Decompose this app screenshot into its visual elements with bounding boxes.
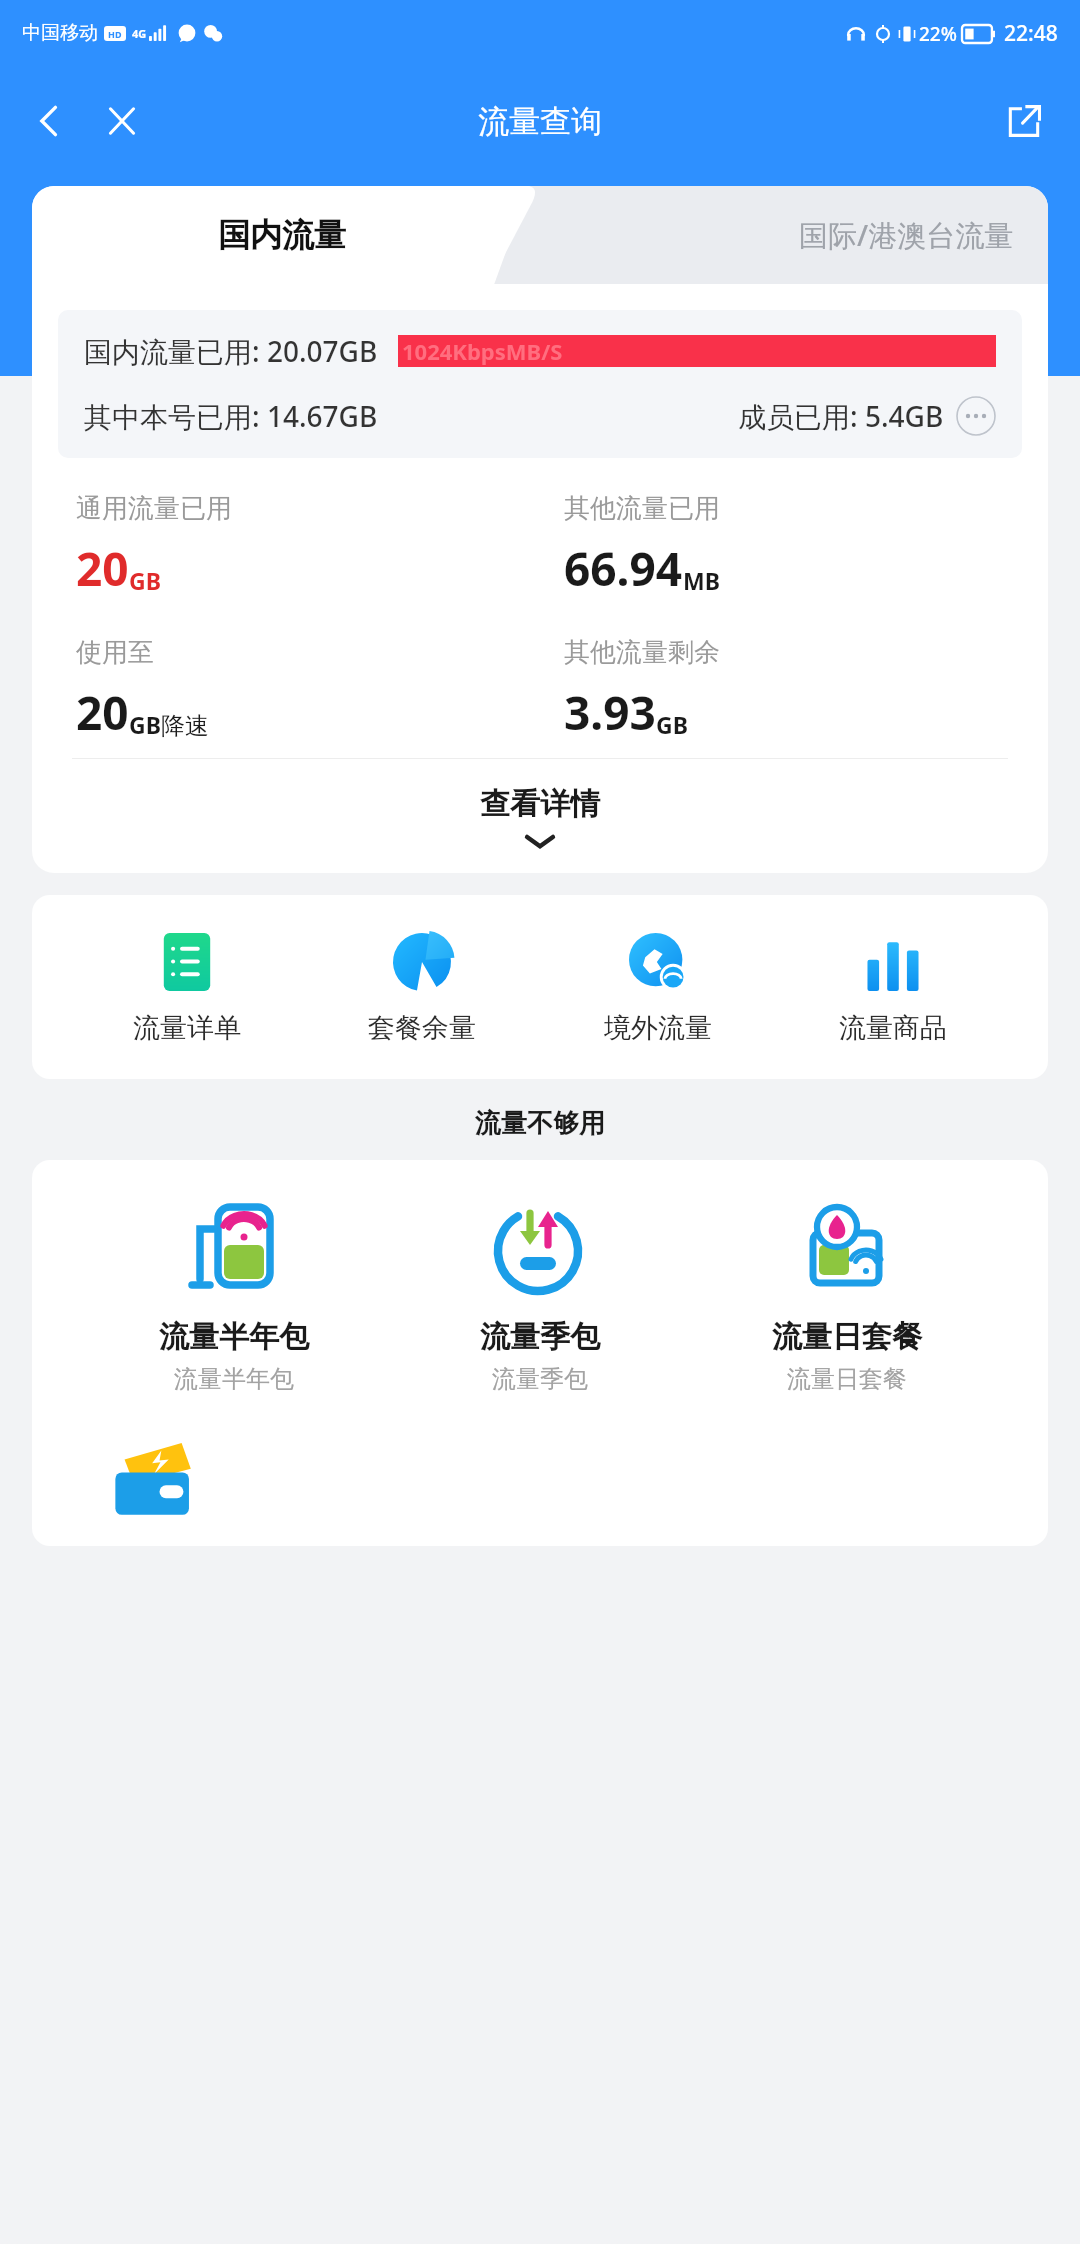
button[interactable]: 流量详单 bbox=[107, 929, 267, 1045]
staticText: 流量不够用 bbox=[0, 1107, 1080, 1140]
button[interactable]: 套餐余量 bbox=[342, 929, 502, 1045]
button[interactable]: 流量半年包 bbox=[129, 1194, 339, 1394]
button[interactable]: 流量季包 bbox=[435, 1194, 645, 1394]
staticText: 流量日套餐 bbox=[772, 1318, 922, 1356]
staticText: HD bbox=[108, 28, 122, 40]
staticText: 22:48 bbox=[1004, 19, 1058, 48]
staticText: 套餐余量 bbox=[368, 1011, 476, 1045]
staticText: 使用至 bbox=[76, 636, 154, 669]
staticText: 流量日套餐 bbox=[787, 1364, 907, 1394]
staticText: 4G bbox=[132, 26, 147, 41]
staticText: 流量半年包 bbox=[159, 1318, 309, 1356]
button[interactable] bbox=[32, 186, 1048, 284]
staticText: 流量季包 bbox=[492, 1364, 588, 1394]
button[interactable]: Share bbox=[988, 85, 1060, 157]
staticText: 流量季包 bbox=[480, 1318, 600, 1356]
button[interactable]: Close bbox=[86, 85, 158, 157]
staticText: 国内流量已用: 20.07GB bbox=[84, 332, 378, 370]
staticText: 流量查询 bbox=[478, 102, 602, 141]
button[interactable]: 境外流量 bbox=[578, 929, 738, 1045]
button[interactable]: 流量日套餐 bbox=[742, 1194, 952, 1394]
staticText: GB bbox=[656, 709, 688, 740]
staticText: 成员已用: 5.4GB bbox=[738, 397, 944, 435]
button[interactable]: 流量商品 bbox=[813, 929, 973, 1045]
staticText: 20 bbox=[76, 537, 129, 600]
staticText: GB bbox=[129, 709, 161, 740]
staticText: MB bbox=[683, 565, 720, 596]
staticText: 流量商品 bbox=[839, 1011, 947, 1045]
staticText: 3.93 bbox=[564, 681, 656, 744]
staticText: 1024KbpsMB/S bbox=[402, 336, 563, 366]
button[interactable]: More members bbox=[956, 396, 996, 436]
staticText: 20 bbox=[76, 681, 129, 744]
button[interactable]: Back bbox=[14, 85, 86, 157]
staticText: 其他流量剩余 bbox=[564, 636, 720, 669]
staticText: 境外流量 bbox=[604, 1011, 712, 1045]
staticText: GB bbox=[129, 565, 161, 596]
staticText: 中国移动 bbox=[22, 21, 98, 45]
staticText: 国际/港澳台流量 bbox=[799, 215, 1014, 255]
button[interactable]: 查看详情 bbox=[32, 785, 1048, 851]
staticText: 流量半年包 bbox=[174, 1364, 294, 1394]
staticText: 查看详情 bbox=[480, 785, 600, 823]
staticText: 流量详单 bbox=[133, 1011, 241, 1045]
staticText: 降速 bbox=[161, 711, 209, 741]
staticText: 22% bbox=[919, 21, 957, 47]
staticText: 通用流量已用 bbox=[76, 492, 232, 525]
button[interactable]: 国内流量 bbox=[32, 186, 540, 284]
staticText: 66.94 bbox=[564, 537, 683, 600]
staticText: 国内流量 bbox=[218, 215, 346, 255]
staticText: 其中本号已用: 14.67GB bbox=[84, 397, 378, 435]
staticText: 其他流量已用 bbox=[564, 492, 720, 525]
